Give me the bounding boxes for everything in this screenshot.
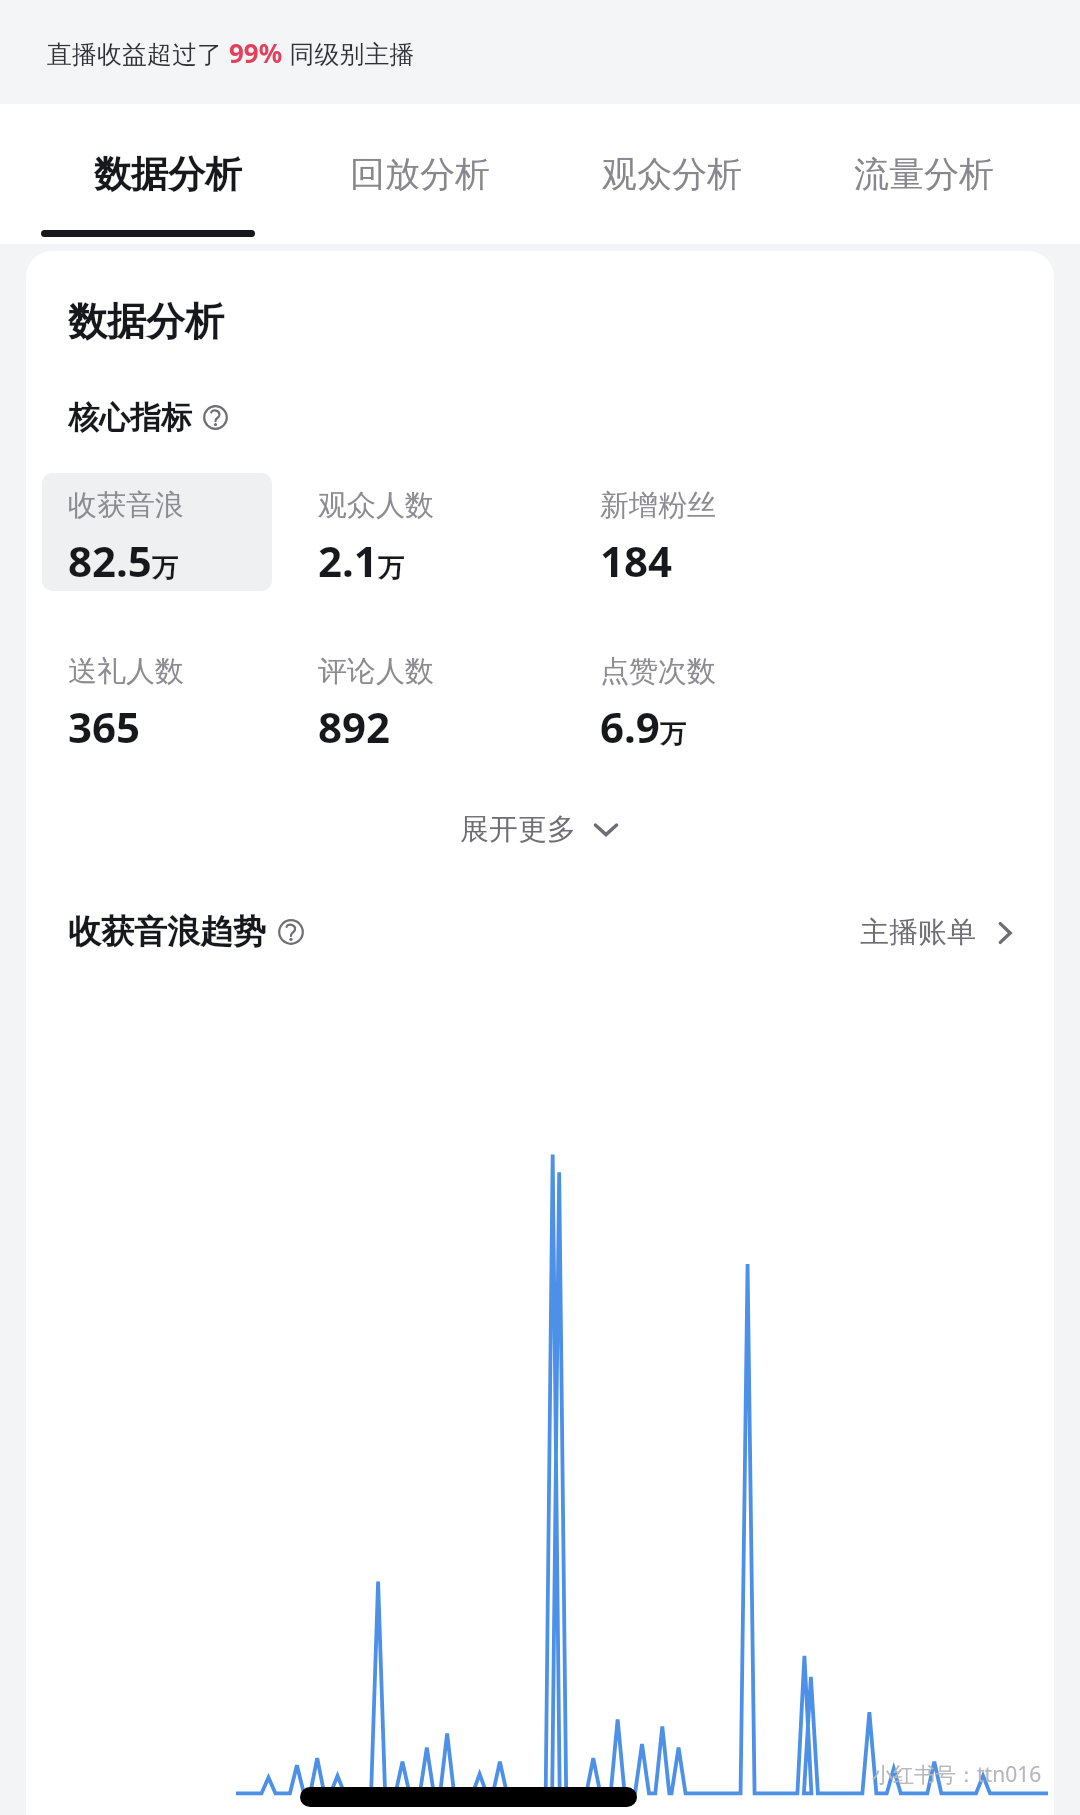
staticText: 收获音浪 <box>68 487 184 524</box>
staticText: 184 <box>600 532 673 589</box>
staticText: 82.5 <box>68 532 152 589</box>
staticText: 2.1 <box>318 532 378 589</box>
button[interactable]: 数据分析 <box>41 104 294 244</box>
button[interactable]: 收获音浪 <box>42 473 272 591</box>
staticText: 展开更多 <box>460 811 576 848</box>
staticText: 小红书号：ttn016 <box>872 1760 1042 1789</box>
staticText: 365 <box>68 698 141 755</box>
staticText: 数据分析 <box>94 151 242 198</box>
button[interactable]: 主播账单 <box>860 914 1018 951</box>
staticText: 万 <box>152 552 178 585</box>
staticText: 99% <box>229 35 283 70</box>
button[interactable]: 送礼人数 <box>42 639 272 757</box>
staticText: 同级别主播 <box>283 36 415 70</box>
staticText: 直播收益超过了 <box>47 36 229 70</box>
other: 主播账单 <box>992 920 1018 946</box>
other: 展开更多 <box>592 815 620 843</box>
staticText: 观众人数 <box>318 487 434 524</box>
staticText: 主播账单 <box>860 914 976 951</box>
button[interactable]: 评论人数 <box>318 639 548 757</box>
button[interactable]: 观众人数 <box>318 473 548 591</box>
staticText: 收获音浪趋势 <box>68 911 266 953</box>
other: 说明 <box>203 405 228 430</box>
other: 说明 <box>278 919 304 945</box>
staticText: 万 <box>660 718 686 751</box>
staticText: 评论人数 <box>318 653 434 690</box>
staticText: 核心指标 <box>68 398 192 437</box>
button[interactable]: 流量分析 <box>798 104 1050 244</box>
staticText: 观众分析 <box>602 152 742 196</box>
staticText: 流量分析 <box>854 152 994 196</box>
staticText: 新增粉丝 <box>600 487 716 524</box>
staticText: 数据分析 <box>68 297 224 346</box>
button[interactable]: 点赞次数 <box>600 639 830 757</box>
staticText: 送礼人数 <box>68 653 184 690</box>
staticText: 6.9 <box>600 698 660 755</box>
button[interactable]: 观众分析 <box>546 104 798 244</box>
staticText: 点赞次数 <box>600 653 716 690</box>
button[interactable]: 展开更多 <box>26 803 1054 855</box>
staticText: 892 <box>318 698 391 755</box>
button[interactable]: 回放分析 <box>294 104 546 244</box>
staticText: 回放分析 <box>350 152 490 196</box>
staticText: 万 <box>378 552 404 585</box>
button[interactable]: 新增粉丝 <box>600 473 830 591</box>
